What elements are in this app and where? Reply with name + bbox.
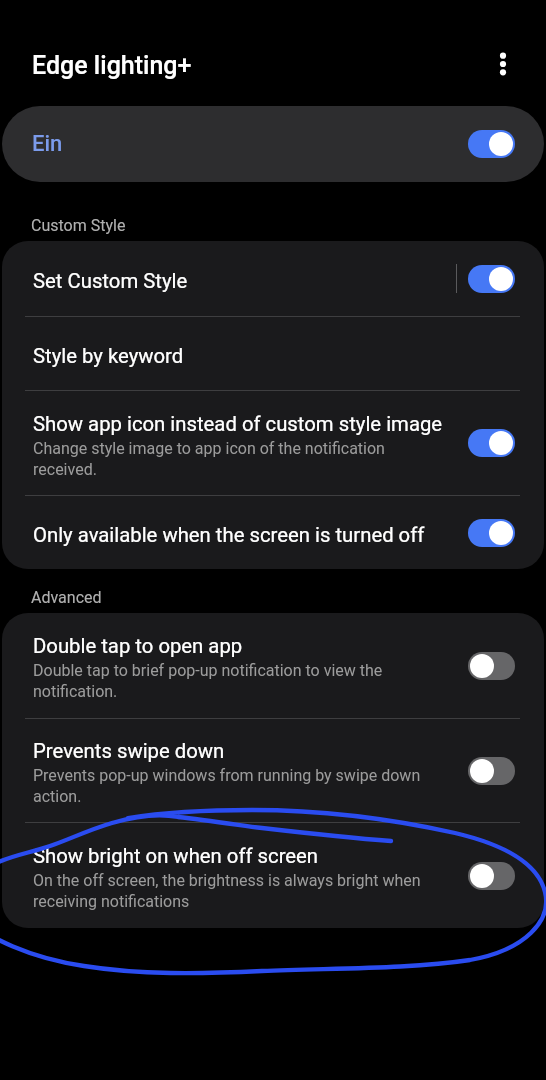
- staticText: Style by keyword: [33, 344, 184, 368]
- staticText: On the off screen, the brightness is alw…: [33, 871, 447, 911]
- button[interactable]: Double tap to open app: [2, 613, 544, 718]
- button[interactable]: Toggle on: [468, 265, 515, 293]
- staticText: Ein: [32, 131, 63, 157]
- staticText: Prevents swipe down: [33, 739, 225, 763]
- staticText: Custom Style: [31, 216, 126, 235]
- staticText: Prevents pop-up windows from running by …: [33, 766, 447, 806]
- button[interactable]: Toggle on: [468, 429, 515, 457]
- staticText: Double tap to brief pop-up notification …: [33, 661, 447, 701]
- button[interactable]: Toggle on: [468, 519, 515, 547]
- button[interactable]: Toggle on: [468, 130, 515, 158]
- button[interactable]: Set Custom Style: [2, 241, 544, 316]
- staticText: Show bright on when off screen: [33, 844, 319, 868]
- staticText: Edge lighting+: [32, 51, 192, 80]
- button[interactable]: Style by keyword: [2, 317, 544, 390]
- staticText: Set Custom Style: [33, 269, 188, 293]
- button[interactable]: Ein: [2, 106, 544, 182]
- button[interactable]: Toggle off: [468, 862, 515, 890]
- staticText: Change style image to app icon of the no…: [33, 439, 447, 479]
- button[interactable]: More options: [483, 44, 523, 84]
- staticText: Double tap to open app: [33, 634, 243, 658]
- button[interactable]: Only available when the screen is turned…: [2, 496, 544, 569]
- button[interactable]: Show app icon instead of custom style im…: [2, 391, 544, 495]
- button[interactable]: Prevents swipe down: [2, 719, 544, 822]
- staticText: Advanced: [31, 588, 102, 607]
- staticText: Show app icon instead of custom style im…: [33, 412, 443, 436]
- button[interactable]: Show bright on when off screen: [2, 823, 544, 928]
- button[interactable]: Toggle off: [468, 757, 515, 785]
- staticText: Only available when the screen is turned…: [33, 523, 425, 547]
- button[interactable]: Toggle off: [468, 652, 515, 680]
